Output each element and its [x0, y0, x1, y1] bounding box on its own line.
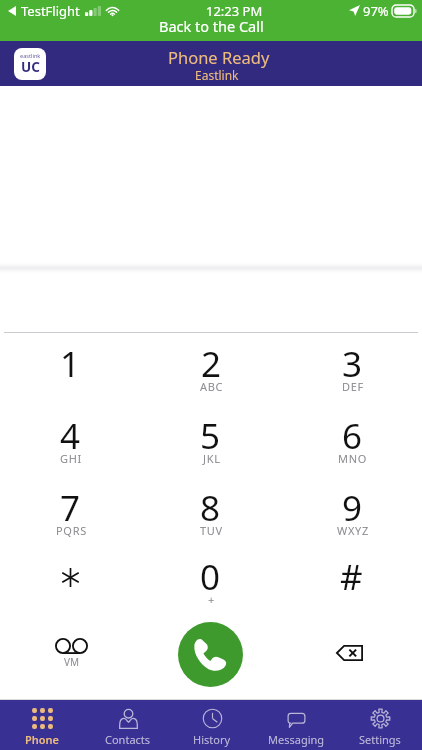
staticText: 12:23 PM [206, 2, 263, 20]
button[interactable]: Phone [0, 700, 85, 750]
staticText: 6 [342, 412, 363, 460]
staticText: Phone [25, 732, 60, 747]
staticText: Contacts [105, 732, 151, 747]
staticText: TUV [200, 523, 223, 538]
staticText: 7 [60, 484, 81, 532]
button[interactable]: 2 [140, 333, 281, 405]
staticText: 97% [363, 2, 389, 20]
staticText: GHI [60, 451, 82, 466]
staticText: ABC [200, 379, 224, 394]
button[interactable]: 1 [0, 333, 140, 405]
staticText: 9 [342, 484, 363, 532]
button[interactable]: Backspace [281, 620, 422, 699]
staticText: 8 [200, 484, 221, 532]
button[interactable]: Eastlink UC [14, 48, 46, 80]
button[interactable]: History [170, 700, 254, 750]
button[interactable]: 0 [140, 549, 281, 620]
button[interactable]: Voicemail [0, 620, 140, 699]
staticText: Phone Ready [168, 46, 270, 68]
staticText: 5 [200, 412, 221, 460]
staticText: 1 [60, 340, 81, 388]
staticText: + [208, 592, 215, 607]
staticText: MNO [338, 451, 368, 466]
staticText: Eastlink [195, 67, 239, 83]
button[interactable]: 7 [0, 477, 140, 549]
button[interactable]: 4 [0, 405, 140, 477]
button[interactable]: 6 [281, 405, 422, 477]
button[interactable]: 8 [140, 477, 281, 549]
button[interactable]: 3 [281, 333, 422, 405]
button[interactable]: Back to the Call [159, 16, 264, 36]
button[interactable]: 5 [140, 405, 281, 477]
staticText: 4 [60, 412, 81, 460]
staticText: TestFlight [21, 2, 80, 20]
button[interactable] [0, 549, 140, 620]
staticText: 2 [201, 340, 222, 388]
staticText: # [340, 553, 363, 601]
button[interactable]: Contacts [85, 700, 170, 750]
staticText: UC [21, 58, 40, 76]
button[interactable]: # [281, 549, 422, 620]
button[interactable]: Settings [338, 700, 422, 750]
staticText: VM [64, 655, 80, 669]
staticText: JKL [203, 451, 221, 466]
staticText: Settings [359, 732, 401, 747]
button[interactable]: Call [178, 622, 243, 687]
staticText: WXYZ [337, 523, 369, 538]
button[interactable]: Messaging [254, 700, 338, 750]
staticText: 3 [342, 340, 363, 388]
staticText: Messaging [268, 732, 325, 747]
staticText: 0 [200, 553, 221, 601]
staticText: DEF [342, 379, 364, 394]
button[interactable]: 9 [281, 477, 422, 549]
staticText: PQRS [56, 523, 87, 538]
staticText: eastlink [20, 52, 41, 60]
staticText: History [193, 732, 231, 747]
